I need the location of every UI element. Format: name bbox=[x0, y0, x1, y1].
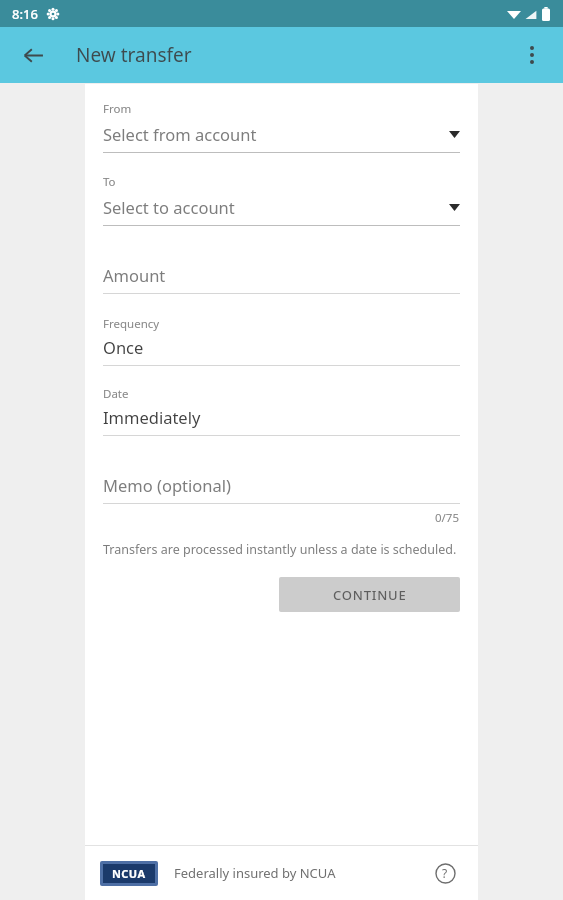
staticText: Amount bbox=[103, 264, 166, 286]
staticText: 0/75 bbox=[435, 510, 460, 526]
button[interactable]: Select from account bbox=[103, 123, 460, 153]
staticText: Select to account bbox=[103, 196, 235, 218]
staticText: From bbox=[103, 101, 132, 117]
button[interactable]: CONTINUE bbox=[279, 577, 460, 612]
button[interactable]: Once bbox=[103, 336, 460, 366]
staticText: To bbox=[103, 174, 116, 190]
staticText: 8:16 bbox=[12, 5, 38, 23]
staticText: Date bbox=[103, 386, 129, 402]
button[interactable]: Memo (optional) bbox=[103, 474, 460, 504]
staticText: CONTINUE bbox=[333, 586, 407, 604]
staticText: Federally insured by NCUA bbox=[174, 864, 336, 882]
staticText: Immediately bbox=[103, 406, 201, 428]
button[interactable]: Immediately bbox=[103, 406, 460, 436]
staticText: Once bbox=[103, 336, 144, 358]
staticText: Memo (optional) bbox=[103, 474, 231, 496]
button[interactable]: Select to account bbox=[103, 196, 460, 226]
button[interactable]: Help bbox=[427, 855, 463, 891]
staticText: Transfers are processed instantly unless… bbox=[103, 541, 457, 558]
button[interactable]: Back bbox=[10, 32, 56, 78]
staticText: Frequency bbox=[103, 316, 160, 332]
button[interactable]: Amount bbox=[103, 264, 460, 294]
staticText: Select from account bbox=[103, 123, 257, 145]
staticText: NCUA bbox=[112, 866, 146, 881]
staticText: New transfer bbox=[76, 42, 192, 68]
staticText: ? bbox=[442, 865, 448, 881]
button[interactable]: More options bbox=[509, 32, 555, 78]
